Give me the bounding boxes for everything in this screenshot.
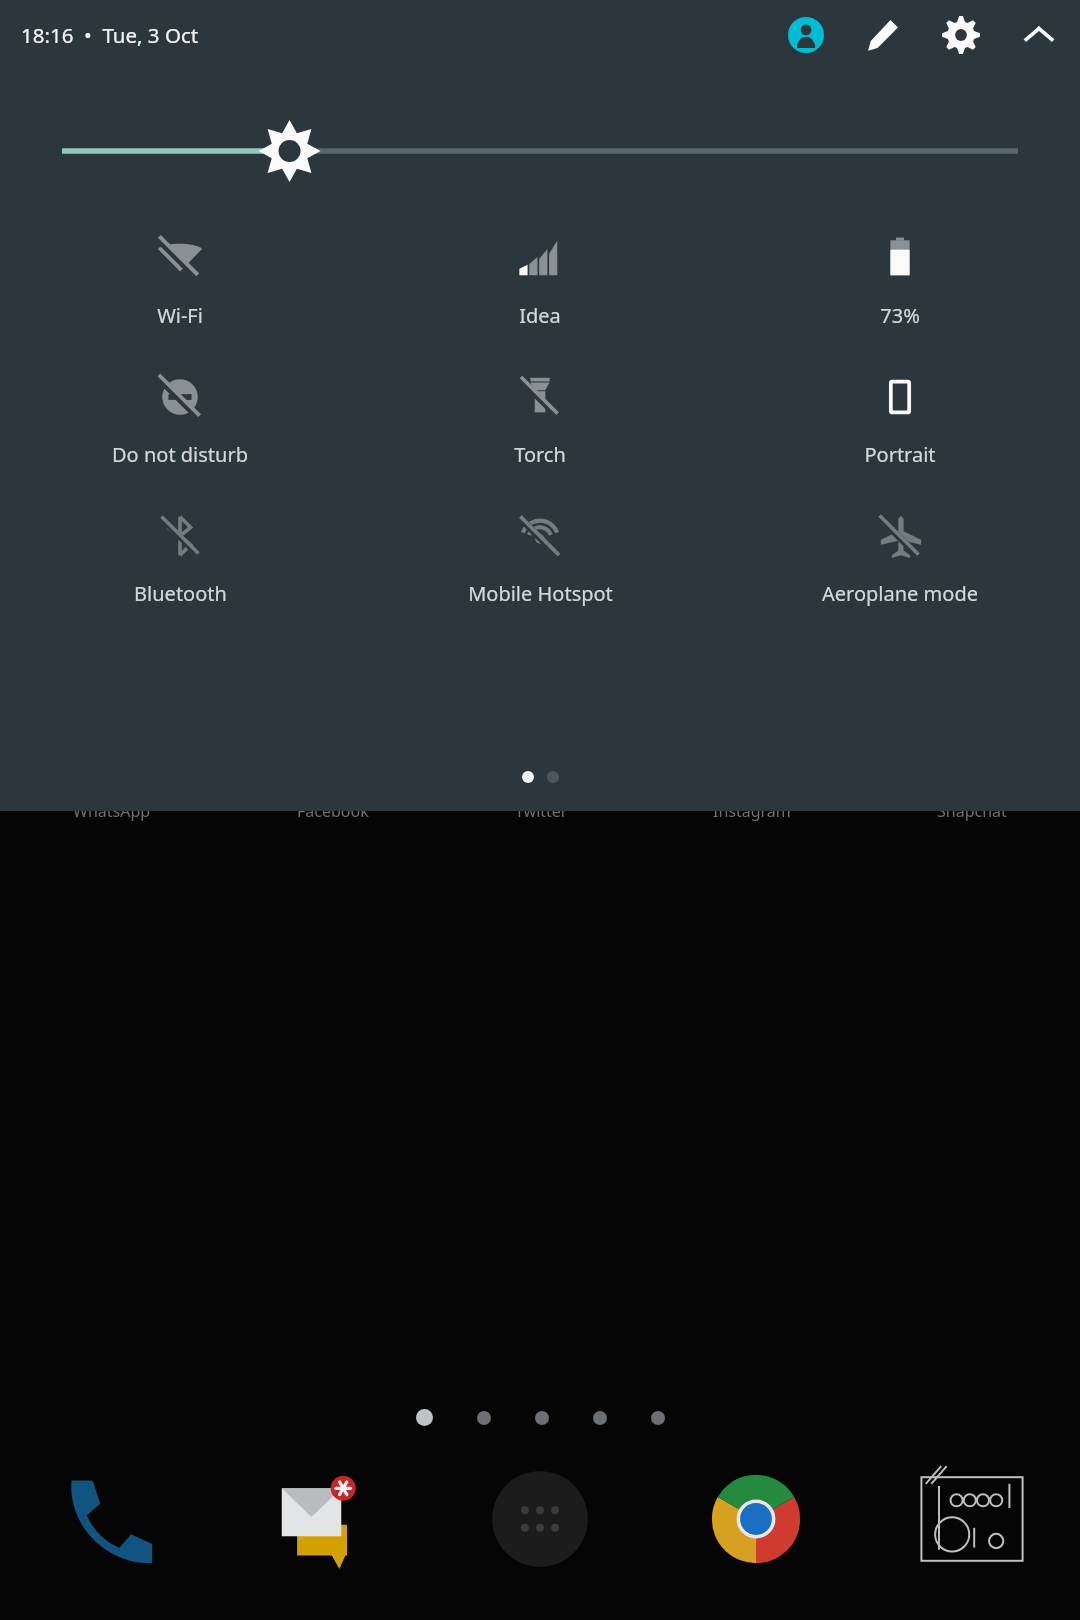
staticText: Idea [519, 302, 561, 329]
staticText: Portrait [864, 441, 936, 468]
button[interactable]: Home page 4 [593, 1411, 607, 1425]
button[interactable]: 73% [720, 228, 1080, 335]
button[interactable]: Do not disturb [0, 367, 360, 474]
staticText: Twitter [515, 800, 568, 822]
button[interactable]: Wi-Fi [0, 228, 360, 335]
staticText: Bluetooth [134, 580, 227, 607]
button[interactable]: Portrait [720, 367, 1080, 474]
button[interactable]: Phone [48, 1459, 168, 1579]
button[interactable]: Home page 3 [535, 1411, 549, 1425]
button[interactable]: Collapse [1016, 12, 1062, 58]
button[interactable]: Mobile Hotspot [360, 506, 720, 613]
button[interactable]: Brightness [0, 118, 1080, 184]
staticText: Do not disturb [112, 441, 248, 468]
staticText: Instagram [713, 800, 791, 822]
button[interactable]: Home page 5 [651, 1411, 665, 1425]
staticText: Snapchat [937, 800, 1007, 822]
button[interactable]: Settings [938, 12, 984, 58]
button[interactable]: Home page 1 [416, 1409, 433, 1426]
button[interactable]: All apps [480, 1459, 600, 1579]
button[interactable]: Torch [360, 367, 720, 474]
button[interactable]: Idea [360, 228, 720, 335]
staticText: Torch [514, 441, 566, 468]
button[interactable]: Page 1 [522, 771, 534, 783]
staticText: 18:16 • Tue, 3 Oct [21, 21, 199, 49]
button[interactable]: Bluetooth [0, 506, 360, 613]
staticText: 73% [880, 302, 920, 329]
button[interactable]: Edit [860, 12, 906, 58]
button[interactable]: User account [784, 13, 828, 57]
button[interactable]: Home page 2 [477, 1411, 491, 1425]
staticText: Wi-Fi [157, 302, 203, 329]
staticText: Mobile Hotspot [468, 580, 613, 607]
staticText: Aeroplane mode [822, 580, 978, 607]
staticText: WhatsApp [73, 800, 151, 822]
button[interactable]: Chrome [696, 1459, 816, 1579]
staticText: Facebook [297, 800, 369, 822]
button[interactable]: Aeroplane mode [720, 506, 1080, 613]
button[interactable]: Camera [912, 1459, 1032, 1579]
button[interactable]: Messaging [264, 1459, 384, 1579]
button[interactable]: Page 2 [547, 771, 559, 783]
